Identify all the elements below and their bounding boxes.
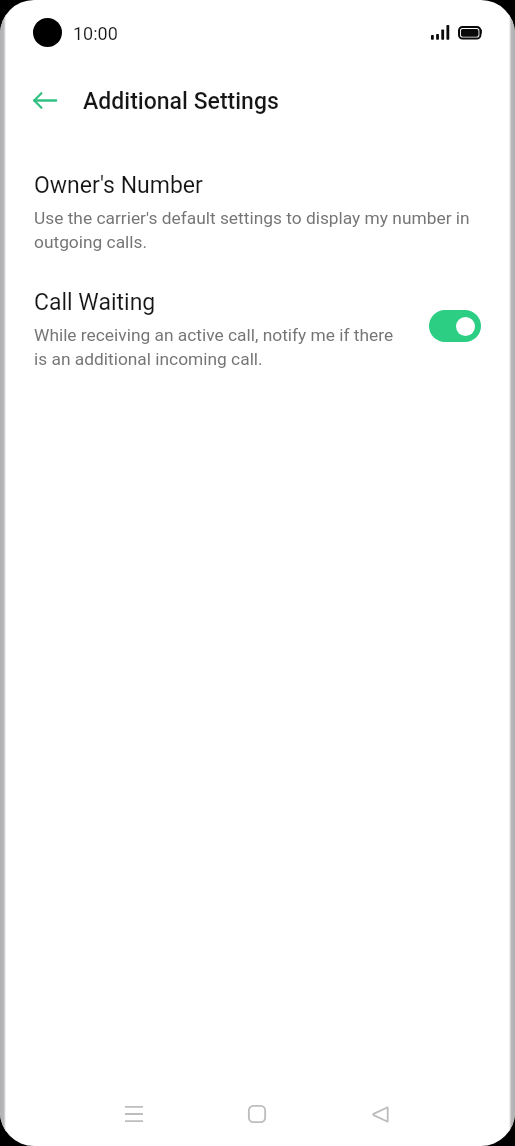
staticText: 10:00	[73, 23, 118, 44]
staticText: While receiving an active call, notify m…	[34, 325, 410, 369]
button[interactable]: Recents	[110, 1090, 158, 1138]
staticText: Call Waiting	[34, 289, 156, 316]
button[interactable]: Call Waiting	[0, 275, 515, 375]
button[interactable]: Call waiting toggle	[429, 310, 481, 342]
staticText: Use the carrier's default settings to di…	[34, 208, 478, 252]
button[interactable]: Home	[233, 1090, 281, 1138]
staticText: Additional Settings	[83, 88, 279, 115]
button[interactable]: Owner's Number	[0, 158, 515, 258]
button[interactable]: Back	[23, 78, 67, 122]
staticText: Owner's Number	[34, 172, 203, 199]
button[interactable]: Back	[356, 1090, 404, 1138]
